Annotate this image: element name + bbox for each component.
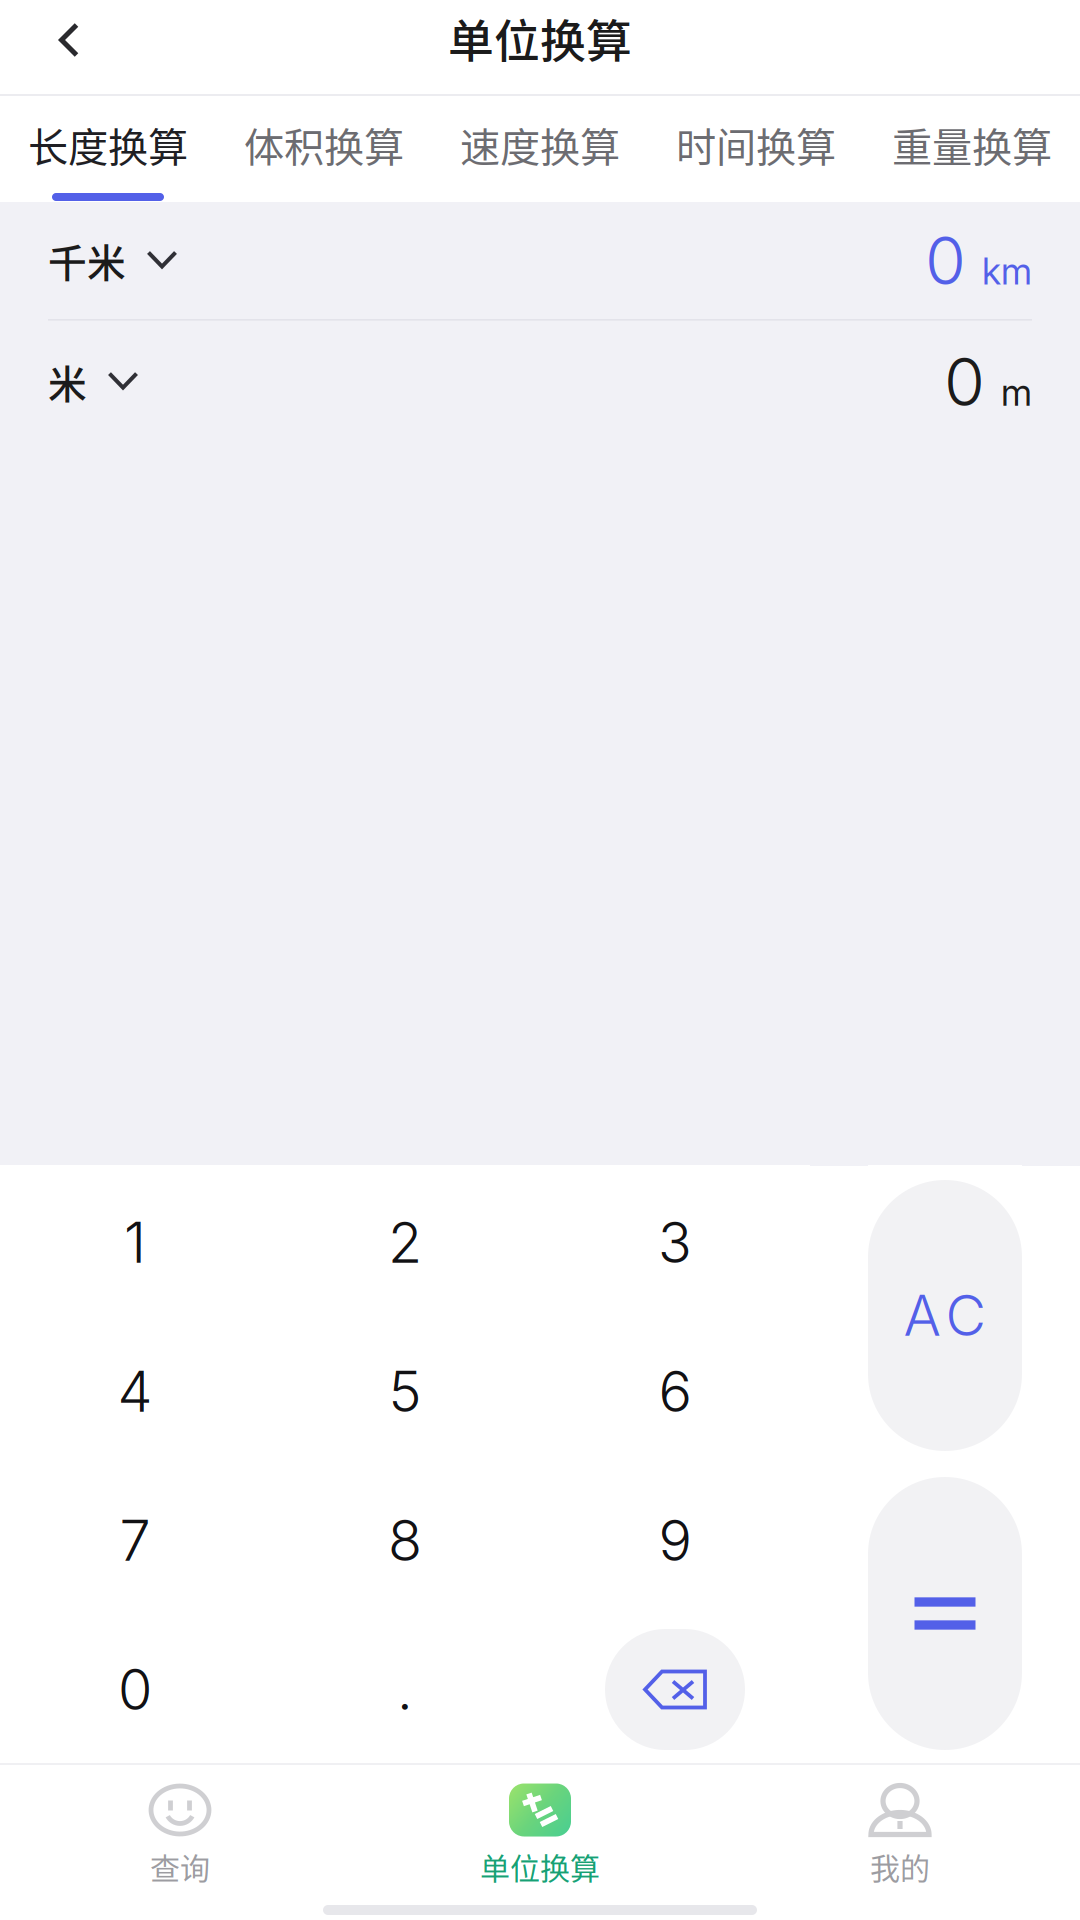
button[interactable]: 3 (540, 1168, 810, 1317)
button[interactable]: 查询 (0, 1762, 360, 1895)
button[interactable]: 米 (48, 336, 153, 428)
staticText: m (1001, 370, 1032, 414)
button[interactable]: 长度换算 (0, 96, 216, 202)
button[interactable]: 千米 (48, 214, 192, 306)
staticText: 我的 (870, 1845, 930, 1888)
button[interactable]: Delete (540, 1615, 810, 1764)
button[interactable]: 7 (0, 1466, 270, 1615)
staticText: 2 (388, 1209, 422, 1276)
staticText: 千米 (48, 232, 126, 288)
staticText: 0 (118, 1656, 152, 1723)
button[interactable]: 速度换算 (432, 96, 648, 202)
staticText: 长度换算 (28, 115, 188, 174)
button[interactable]: . (270, 1615, 540, 1764)
staticText: . (397, 1656, 413, 1723)
button[interactable]: Equals (868, 1477, 1022, 1750)
button[interactable]: 我的 (720, 1762, 1080, 1895)
staticText: 1 (124, 1209, 146, 1276)
staticText: 5 (388, 1358, 421, 1425)
button[interactable]: 4 (0, 1317, 270, 1466)
staticText: AC (903, 1282, 986, 1349)
button[interactable]: AC (868, 1180, 1022, 1451)
staticText: 6 (658, 1358, 691, 1425)
button[interactable]: 8 (270, 1466, 540, 1615)
button[interactable]: Back (9, 0, 129, 80)
button[interactable]: 9 (540, 1466, 810, 1615)
staticText: 速度换算 (460, 115, 620, 174)
staticText: km (982, 249, 1032, 293)
staticText: 7 (119, 1507, 150, 1574)
button[interactable]: 体积换算 (216, 96, 432, 202)
staticText: 9 (658, 1507, 691, 1574)
staticText: 单位换算 (480, 1845, 600, 1888)
staticText: 0 (925, 220, 966, 300)
staticText: 体积换算 (244, 115, 404, 174)
staticText: 8 (388, 1507, 422, 1574)
button[interactable]: 时间换算 (648, 96, 864, 202)
button[interactable]: 1 (0, 1168, 270, 1317)
staticText: 重量换算 (892, 115, 1052, 174)
button[interactable]: 6 (540, 1317, 810, 1466)
staticText: 单位换算 (448, 5, 632, 71)
button[interactable]: 0 (0, 1615, 270, 1764)
staticText: 3 (658, 1209, 692, 1276)
staticText: 时间换算 (676, 115, 836, 174)
button[interactable]: 重量换算 (864, 96, 1080, 202)
button[interactable]: 2 (270, 1168, 540, 1317)
staticText: 0 (944, 341, 985, 422)
staticText: 4 (117, 1358, 152, 1425)
button[interactable]: 5 (270, 1317, 540, 1466)
button[interactable]: 单位换算 (360, 1762, 720, 1895)
staticText: 查询 (150, 1845, 210, 1888)
staticText: 米 (48, 354, 87, 410)
